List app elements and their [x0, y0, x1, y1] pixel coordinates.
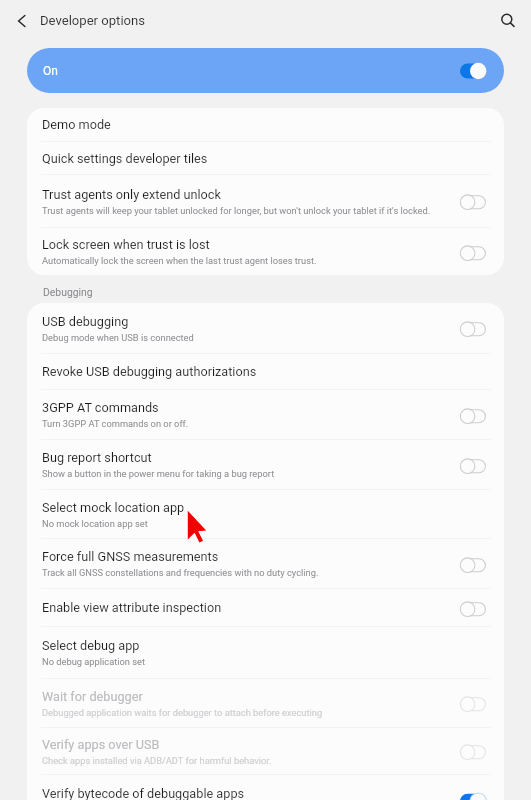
button[interactable]: Bug report shortcut	[27, 440, 504, 489]
staticText: Revoke USB debugging authorizations	[42, 364, 257, 379]
staticText: Debugging	[43, 286, 93, 298]
staticText: Enable view attribute inspection	[42, 600, 222, 615]
staticText: Automatically lock the screen when the l…	[42, 255, 317, 266]
button[interactable]: Trust agents only extend unlock	[27, 175, 504, 227]
staticText: Wait for debugger	[42, 689, 143, 704]
button[interactable]: Select debug app	[27, 627, 504, 678]
button[interactable]: Demo mode	[27, 108, 504, 141]
staticText: Developer options	[40, 13, 146, 28]
staticText: Select mock location app	[42, 500, 185, 515]
button[interactable]: Wait for debugger	[27, 679, 504, 727]
button[interactable]: Quick settings developer tiles	[27, 142, 504, 174]
button[interactable]: Enable view attribute inspection	[27, 589, 504, 626]
staticText: Show a button in the power menu for taki…	[42, 468, 275, 479]
button[interactable]: 3GPP AT commands	[27, 390, 504, 439]
staticText: Track all GNSS constellations and freque…	[42, 567, 319, 578]
staticText: Debugged application waits for debugger …	[42, 707, 323, 718]
button[interactable]: Search	[495, 8, 521, 34]
button[interactable]: Verify bytecode of debuggable apps	[27, 775, 504, 800]
staticText: Check apps installed via ADB/ADT for har…	[42, 755, 272, 766]
staticText: Quick settings developer tiles	[42, 151, 208, 166]
staticText: Select debug app	[42, 638, 140, 653]
button[interactable]: USB debugging	[27, 303, 504, 353]
button[interactable]: Revoke USB debugging authorizations	[27, 354, 504, 389]
staticText: 3GPP AT commands	[42, 400, 159, 415]
staticText: Bug report shortcut	[42, 450, 152, 465]
staticText: Verify bytecode of debuggable apps	[42, 786, 245, 800]
button[interactable]: Select mock location app	[27, 490, 504, 538]
staticText: Demo mode	[42, 117, 111, 132]
button[interactable]: Back	[10, 9, 34, 33]
button[interactable]: On	[27, 48, 504, 93]
button[interactable]: Force full GNSS measurements	[27, 539, 504, 588]
staticText: Debug mode when USB is connected	[42, 332, 194, 343]
button[interactable]: Lock screen when trust is lost	[27, 228, 504, 275]
staticText: No mock location app set	[42, 518, 148, 529]
staticText: Trust agents will keep your tablet unloc…	[42, 205, 431, 216]
staticText: Turn 3GPP AT commands on or off.	[42, 418, 189, 429]
staticText: USB debugging	[42, 314, 129, 329]
staticText: Verify apps over USB	[42, 737, 160, 752]
staticText: No debug application set	[42, 656, 146, 667]
button[interactable]: Verify apps over USB	[27, 728, 504, 774]
staticText: On	[43, 64, 58, 78]
staticText: Force full GNSS measurements	[42, 549, 219, 564]
staticText: Lock screen when trust is lost	[42, 237, 210, 252]
staticText: Trust agents only extend unlock	[42, 187, 221, 202]
